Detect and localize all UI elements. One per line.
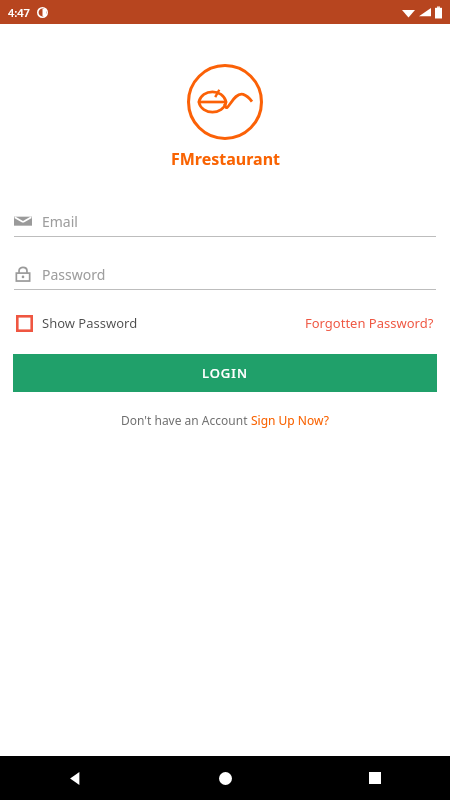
staticText: Sign Up Now? [251,412,329,428]
button[interactable]: Show Password [14,308,140,338]
staticText: Password [42,265,106,284]
staticText: 4:47 [8,5,30,20]
other: Password icon [14,265,32,283]
button[interactable]: Password icon [14,259,436,290]
button[interactable]: Back [0,756,150,800]
button[interactable]: Home [150,756,300,800]
staticText: LOGIN [202,364,249,382]
staticText: Email [42,212,78,231]
staticText: Show Password [42,314,138,332]
staticText: Don't have an Account [121,412,251,428]
staticText: FMrestaurant [171,148,280,170]
button[interactable]: Forgotten Password? [303,308,436,338]
button[interactable]: LOGIN [13,354,437,392]
button[interactable]: Recent apps [300,756,450,800]
button[interactable]: Sign Up Now? [251,408,329,432]
button[interactable]: Email icon [14,206,436,237]
other: Email icon [14,212,32,230]
staticText: Forgotten Password? [305,314,434,332]
